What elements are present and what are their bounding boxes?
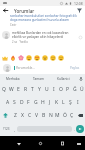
staticText: W: [9, 86, 14, 93]
button[interactable]: Reaction: [41, 54, 49, 62]
button[interactable]: G: [32, 96, 39, 109]
button[interactable]: R: [22, 83, 29, 96]
staticText: N: [49, 112, 53, 119]
staticText: Yorum ekle...: [16, 66, 35, 70]
staticText: mehlikaa Bunlardan en cok kazandiran: [12, 31, 69, 35]
staticText: D: [20, 99, 24, 106]
staticText: J: [49, 99, 51, 106]
staticText: S: [13, 99, 16, 106]
staticText: M: [55, 112, 60, 119]
button[interactable]: O: [57, 83, 64, 96]
button[interactable]: Reaction: [49, 54, 57, 62]
staticText: K: [55, 99, 59, 106]
button[interactable]: Merhaba: [0, 74, 26, 83]
button[interactable]: I: [74, 96, 81, 109]
staticText: L: [62, 99, 65, 106]
button[interactable]: ?123: [1, 122, 12, 136]
button[interactable]: W: [8, 83, 15, 96]
button[interactable]: Hide keyboard: [74, 139, 83, 148]
staticText: G: [34, 99, 38, 106]
button[interactable]: Shift: [0, 109, 11, 122]
button[interactable]: I: [50, 83, 57, 96]
button[interactable]: P: [64, 83, 71, 96]
button[interactable]: Q: [0, 83, 8, 96]
staticText: F: [27, 99, 30, 106]
button[interactable]: Recents: [58, 139, 67, 148]
staticText: ?123: [3, 127, 10, 131]
button[interactable]: Reaction: [17, 54, 25, 62]
staticText: Q: [2, 86, 6, 93]
staticText: Ç: [70, 112, 74, 119]
button[interactable]: Reaction: [25, 54, 33, 62]
button[interactable]: Back: [0, 6, 11, 15]
button[interactable]: K: [53, 96, 60, 109]
button[interactable]: Home: [36, 139, 45, 148]
button[interactable]: Reaction: [9, 54, 17, 62]
button[interactable]: N: [47, 109, 54, 122]
staticText: P: [66, 86, 70, 93]
staticText: Cevir: [10, 23, 17, 27]
button[interactable]: Ğ: [71, 83, 78, 96]
button[interactable]: A: [4, 96, 11, 109]
button[interactable]: .: [72, 122, 76, 136]
button[interactable]: Backspace: [75, 109, 85, 122]
button[interactable]: L: [60, 96, 67, 109]
button[interactable]: U: [43, 83, 50, 96]
button[interactable]: Ç: [68, 109, 75, 122]
staticText: sonbaharinsonbulutlari sonbahar fotograf…: [10, 14, 84, 22]
button[interactable]: Reaction: [57, 54, 65, 62]
button[interactable]: Filter: [73, 6, 85, 15]
button[interactable]: H: [39, 96, 46, 109]
staticText: .: [74, 127, 75, 132]
staticText: I: [53, 86, 55, 93]
staticText: Ü: [80, 86, 84, 93]
button[interactable]: D: [18, 96, 25, 109]
staticText: Y: [38, 86, 41, 93]
staticText: O: [59, 86, 63, 93]
button[interactable]: Back: [14, 139, 23, 148]
button[interactable]: Kullanici: [51, 74, 76, 83]
button[interactable]: Voice input: [76, 74, 85, 83]
staticText: Ş: [69, 99, 72, 106]
button[interactable]: V: [33, 109, 40, 122]
staticText: A: [6, 99, 10, 106]
staticText: Ğ: [73, 86, 77, 93]
button[interactable]: B: [40, 109, 47, 122]
button[interactable]: T: [29, 83, 36, 96]
staticText: B: [42, 112, 46, 119]
button[interactable]: ,: [12, 122, 17, 136]
staticText: I: [77, 99, 79, 106]
staticText: Kullanici: [57, 77, 70, 81]
button[interactable]: Reaction: [1, 54, 9, 62]
button[interactable]: Tamam: [26, 74, 51, 83]
button[interactable]: M: [54, 109, 61, 122]
button[interactable]: F: [25, 96, 32, 109]
button[interactable]: Reaction: [33, 54, 41, 62]
staticText: Z: [14, 112, 17, 119]
staticText: Tamam: [33, 77, 45, 81]
staticText: Merhaba: [6, 77, 20, 81]
staticText: U: [45, 86, 49, 93]
button[interactable]: Send: [76, 125, 84, 133]
button[interactable]: Ö: [61, 109, 68, 122]
button[interactable]: Paylas: [68, 64, 82, 72]
staticText: H: [41, 99, 45, 106]
button[interactable]: Ü: [78, 83, 85, 96]
staticText: Ö: [63, 112, 67, 119]
button[interactable]: J: [46, 96, 53, 109]
button[interactable]: Z: [11, 109, 19, 122]
staticText: Yorumlar: [14, 8, 35, 14]
button[interactable]: Like: [78, 35, 83, 40]
button[interactable]: Y: [36, 83, 43, 96]
button[interactable]: C: [26, 109, 33, 122]
staticText: 12:08: [74, 1, 83, 6]
button[interactable]: E: [15, 83, 22, 96]
button[interactable]: X: [19, 109, 26, 122]
staticText: T: [31, 86, 34, 93]
staticText: X: [21, 112, 24, 119]
staticText: E: [17, 86, 20, 93]
button[interactable]: Ş: [67, 96, 74, 109]
button[interactable]: S: [11, 96, 18, 109]
staticText: C: [28, 112, 32, 119]
